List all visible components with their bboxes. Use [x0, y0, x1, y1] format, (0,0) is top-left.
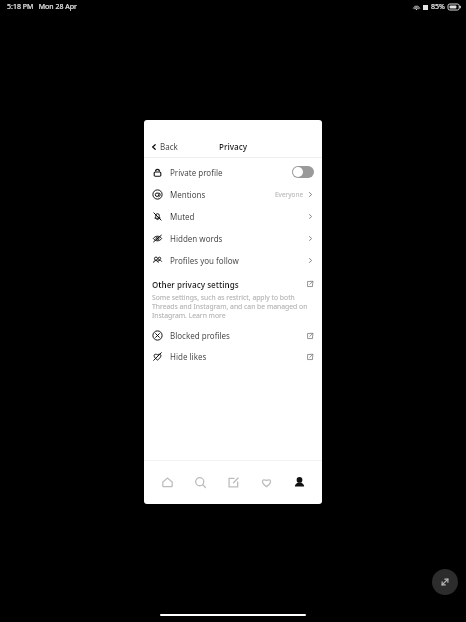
button[interactable]: Hidden words: [144, 227, 322, 249]
button[interactable]: Resize window: [432, 569, 458, 595]
staticText: Blocked profiles: [170, 330, 306, 341]
staticText: Some settings, such as restrict, apply t…: [152, 293, 312, 320]
button[interactable]: Other privacy settings: [144, 277, 322, 291]
button[interactable]: Mentions: [144, 183, 322, 205]
button[interactable]: Profile: [286, 469, 312, 495]
staticText: Muted: [170, 211, 307, 222]
staticText: Hide likes: [170, 351, 306, 362]
button[interactable]: Muted: [144, 205, 322, 227]
staticText: Other privacy settings: [152, 279, 306, 290]
staticText: 5:18 PM Mon 28 Apr: [7, 2, 77, 12]
staticText: Everyone: [275, 190, 304, 199]
staticText: Private profile: [170, 167, 292, 178]
staticText: Profiles you follow: [170, 255, 307, 266]
button[interactable]: Hide likes: [144, 346, 322, 367]
button[interactable]: Profiles you follow: [144, 249, 322, 271]
button[interactable]: Private profile toggle: [292, 166, 314, 178]
button[interactable]: Search: [187, 469, 213, 495]
button[interactable]: Home: [154, 469, 180, 495]
button[interactable]: Compose: [220, 469, 246, 495]
button[interactable]: Back: [150, 141, 178, 152]
staticText: Hidden words: [170, 233, 307, 244]
other: Open other privacy settings: [306, 280, 314, 288]
staticText: 85%: [431, 2, 445, 12]
button[interactable]: Activity: [253, 469, 279, 495]
staticText: Back: [160, 141, 178, 152]
button[interactable]: Blocked profiles: [144, 325, 322, 346]
staticText: Mentions: [170, 189, 275, 200]
button[interactable]: Private profile: [144, 161, 322, 183]
staticText: Privacy: [219, 141, 248, 152]
